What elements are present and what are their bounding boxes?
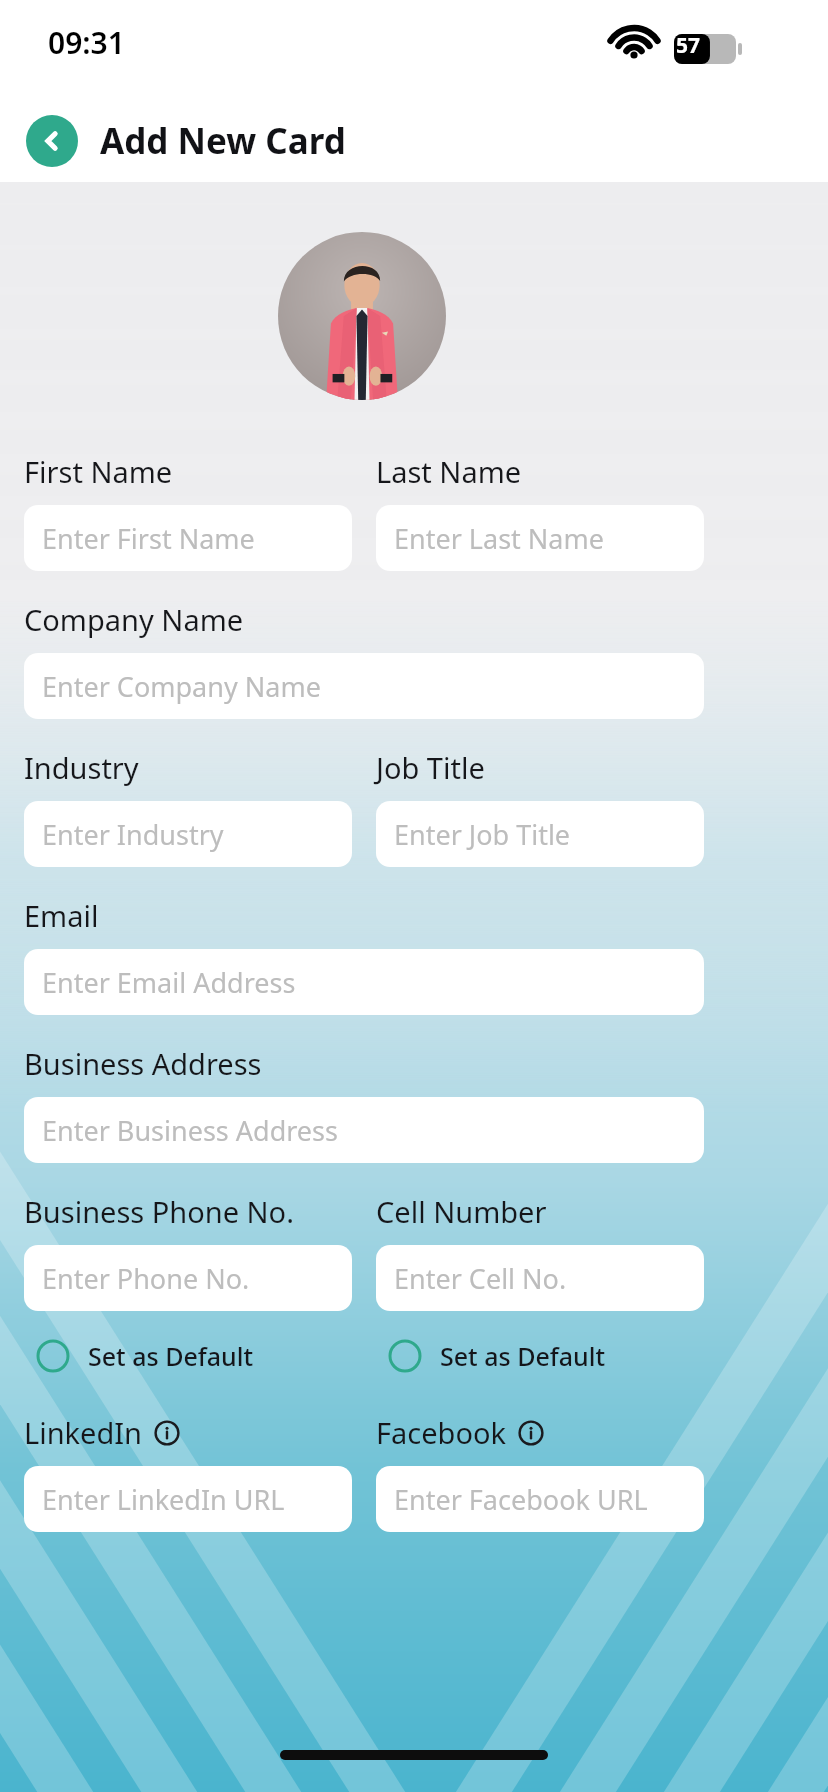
button[interactable]: Enter LinkedIn URL bbox=[24, 1466, 352, 1532]
button[interactable]: Enter Phone No. bbox=[24, 1245, 352, 1311]
button[interactable]: Enter Email Address bbox=[24, 949, 704, 1015]
staticText: Enter Company Name bbox=[42, 668, 321, 705]
button[interactable]: Set as Default bbox=[32, 1335, 257, 1377]
staticText: Enter Cell No. bbox=[394, 1260, 567, 1297]
button[interactable]: Back bbox=[26, 115, 78, 167]
staticText: Enter LinkedIn URL bbox=[42, 1481, 285, 1518]
staticText: Enter First Name bbox=[42, 520, 255, 557]
staticText: Enter Job Title bbox=[394, 816, 571, 853]
staticText: Company Name bbox=[24, 600, 244, 639]
staticText: Job Title bbox=[376, 748, 485, 787]
button[interactable]: Enter Facebook URL bbox=[376, 1466, 704, 1532]
button[interactable]: Profile photo bbox=[278, 232, 446, 400]
staticText: LinkedIn bbox=[24, 1413, 143, 1452]
button[interactable]: LinkedIn info bbox=[153, 1419, 181, 1447]
staticText: Enter Facebook URL bbox=[394, 1481, 648, 1518]
staticText: Last Name bbox=[376, 452, 522, 491]
staticText: 09:31 bbox=[48, 22, 125, 63]
staticText: Industry bbox=[24, 748, 139, 787]
button[interactable]: Enter Job Title bbox=[376, 801, 704, 867]
staticText: 57 bbox=[676, 31, 701, 60]
staticText: Set as Default bbox=[88, 1339, 253, 1373]
button[interactable]: Enter Cell No. bbox=[376, 1245, 704, 1311]
staticText: Business Phone No. bbox=[24, 1192, 294, 1231]
staticText: Set as Default bbox=[440, 1339, 605, 1373]
button[interactable]: Facebook info bbox=[517, 1419, 545, 1447]
staticText: Enter Email Address bbox=[42, 964, 296, 1001]
staticText: Add New Card bbox=[100, 117, 346, 165]
staticText: Enter Business Address bbox=[42, 1112, 338, 1149]
staticText: Facebook bbox=[376, 1413, 507, 1452]
button[interactable]: Enter Company Name bbox=[24, 653, 704, 719]
staticText: Cell Number bbox=[376, 1192, 547, 1231]
button[interactable]: Enter Business Address bbox=[24, 1097, 704, 1163]
button[interactable]: Enter Last Name bbox=[376, 505, 704, 571]
staticText: Business Address bbox=[24, 1044, 262, 1083]
staticText: Enter Last Name bbox=[394, 520, 604, 557]
staticText: First Name bbox=[24, 452, 173, 491]
button[interactable]: Enter Industry bbox=[24, 801, 352, 867]
staticText: Enter Phone No. bbox=[42, 1260, 250, 1297]
staticText: Email bbox=[24, 896, 99, 935]
staticText: Enter Industry bbox=[42, 816, 224, 853]
button[interactable]: Set as Default bbox=[384, 1335, 609, 1377]
button[interactable]: Enter First Name bbox=[24, 505, 352, 571]
